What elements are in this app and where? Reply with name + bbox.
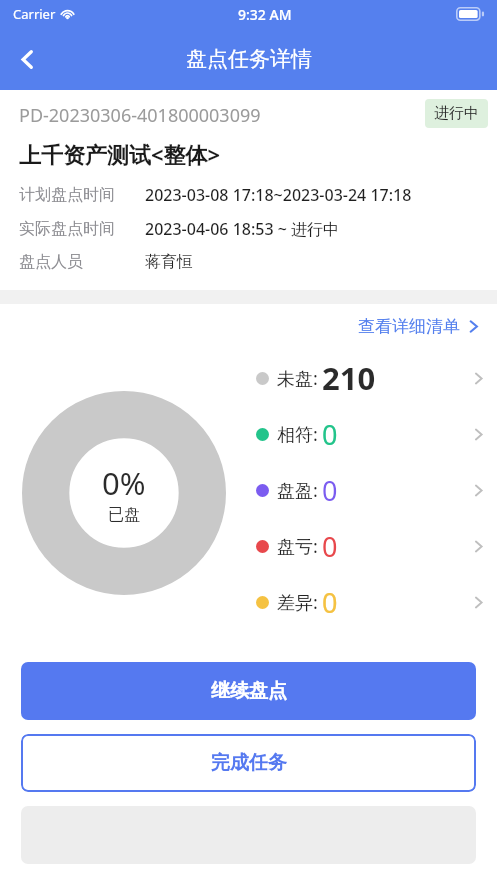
- staticText: 已盘: [108, 505, 140, 525]
- staticText: 210: [322, 357, 376, 399]
- button[interactable]: 进行中: [425, 99, 488, 128]
- staticText: 未盘:: [277, 366, 318, 391]
- button[interactable]: 盘亏:: [247, 518, 497, 574]
- button[interactable]: 完成任务: [21, 734, 476, 792]
- staticText: 2023-03-08 17:18~2023-03-24 17:18: [145, 184, 412, 206]
- button[interactable]: Back: [0, 32, 54, 86]
- button[interactable]: 继续盘点: [21, 662, 476, 720]
- button[interactable]: 盘盈:: [247, 462, 497, 518]
- staticText: 继续盘点: [211, 679, 287, 703]
- staticText: 0%: [102, 462, 146, 504]
- staticText: 0: [322, 416, 338, 453]
- staticText: 盘亏:: [277, 534, 318, 559]
- button[interactable]: 未盘:: [247, 350, 497, 406]
- staticText: 0: [322, 528, 338, 565]
- button[interactable]: 相符:: [247, 406, 497, 462]
- button[interactable]: 查看详细清单: [341, 308, 497, 345]
- staticText: 9:32 AM: [238, 5, 292, 24]
- staticText: 盘盈:: [277, 478, 318, 503]
- staticText: Carrier: [13, 5, 56, 23]
- staticText: PD-20230306-401800003099: [19, 103, 261, 128]
- staticText: 2023-04-06 18:53 ~ 进行中: [145, 218, 340, 240]
- staticText: 上千资产测试<整体>: [19, 139, 221, 169]
- staticText: 差异:: [277, 590, 318, 615]
- staticText: 蒋育恒: [145, 252, 193, 272]
- staticText: 0: [322, 584, 338, 621]
- staticText: 计划盘点时间: [19, 185, 115, 205]
- staticText: 查看详细清单: [358, 316, 460, 337]
- staticText: 相符:: [277, 422, 318, 447]
- staticText: 完成任务: [211, 751, 287, 775]
- staticText: 进行中: [434, 104, 479, 123]
- button[interactable]: 差异:: [247, 574, 497, 630]
- staticText: 0: [322, 472, 338, 509]
- staticText: 实际盘点时间: [19, 219, 115, 239]
- staticText: 盘点人员: [19, 252, 83, 272]
- staticText: 盘点任务详情: [186, 46, 312, 72]
